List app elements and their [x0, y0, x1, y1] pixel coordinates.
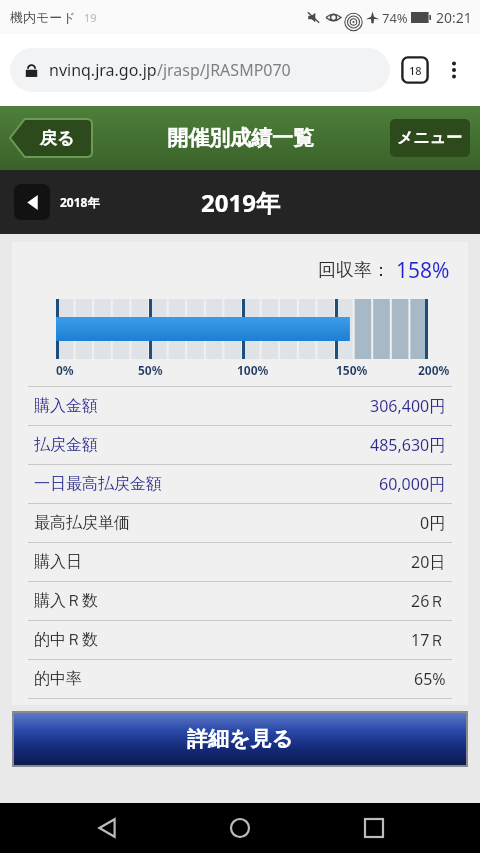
staticText: 74% [382, 9, 408, 27]
button[interactable]: 購入日 [12, 543, 468, 581]
staticText: 306,400円 [370, 395, 446, 417]
staticText: 的中Ｒ数 [34, 630, 98, 650]
staticText: 機内モード [10, 9, 76, 25]
staticText: 150% [336, 362, 368, 378]
button[interactable]: 的中Ｒ数 [12, 621, 468, 659]
staticText: 購入日 [34, 552, 82, 572]
button[interactable]: 戻る [10, 119, 92, 157]
button[interactable]: 的中率 [12, 660, 468, 698]
button[interactable]: nvinq.jra.go.jp [10, 48, 390, 92]
staticText: 19 [84, 10, 97, 25]
staticText: 17Ｒ [411, 629, 446, 651]
staticText: 戻る [40, 128, 75, 149]
button[interactable]: 購入Ｒ数 [12, 582, 468, 620]
staticText: 0% [56, 362, 74, 378]
staticText: 一日最高払戻金額 [34, 474, 162, 494]
staticText: 20日 [411, 551, 446, 573]
button[interactable]: Tabs [400, 55, 430, 85]
staticText: 購入Ｒ数 [34, 591, 98, 611]
button[interactable]: Back [80, 803, 134, 853]
staticText: 200% [418, 362, 450, 378]
staticText: nvinq.jra.go.jp [49, 59, 157, 81]
button[interactable]: Previous year [14, 184, 100, 220]
staticText: 詳細を見る [187, 726, 293, 752]
staticText: 開催別成績一覧 [167, 125, 314, 151]
button[interactable]: More options [438, 54, 470, 86]
staticText: 購入金額 [34, 396, 98, 416]
button[interactable]: 最高払戻単価 [12, 504, 468, 542]
staticText: 2018年 [60, 194, 100, 210]
staticText: 100% [237, 362, 269, 378]
staticText: 158% [396, 256, 450, 285]
button[interactable]: 払戻金額 [12, 426, 468, 464]
staticText: 18 [409, 63, 422, 78]
staticText: /jrasp/JRASMP070 [157, 59, 291, 81]
staticText: 的中率 [34, 669, 82, 689]
staticText: 60,000円 [379, 473, 446, 495]
staticText: メニュー [397, 128, 463, 148]
button[interactable]: 詳細を見る [14, 713, 466, 765]
staticText: 26Ｒ [411, 590, 446, 612]
button[interactable]: 購入金額 [12, 387, 468, 425]
staticText: 485,630円 [370, 434, 446, 456]
staticText: 2019年 [201, 186, 280, 219]
staticText: 20:21 [436, 8, 472, 27]
staticText: 0円 [420, 512, 446, 534]
staticText: 65% [414, 668, 446, 690]
button[interactable]: 一日最高払戻金額 [12, 465, 468, 503]
staticText: 最高払戻単価 [34, 513, 130, 533]
button[interactable]: Recents [347, 803, 401, 853]
button[interactable]: メニュー [390, 119, 470, 157]
other: Previous year [14, 184, 50, 220]
staticText: 回収率： [318, 259, 390, 282]
staticText: 50% [138, 362, 163, 378]
staticText: 払戻金額 [34, 435, 98, 455]
button[interactable]: Home [213, 803, 267, 853]
